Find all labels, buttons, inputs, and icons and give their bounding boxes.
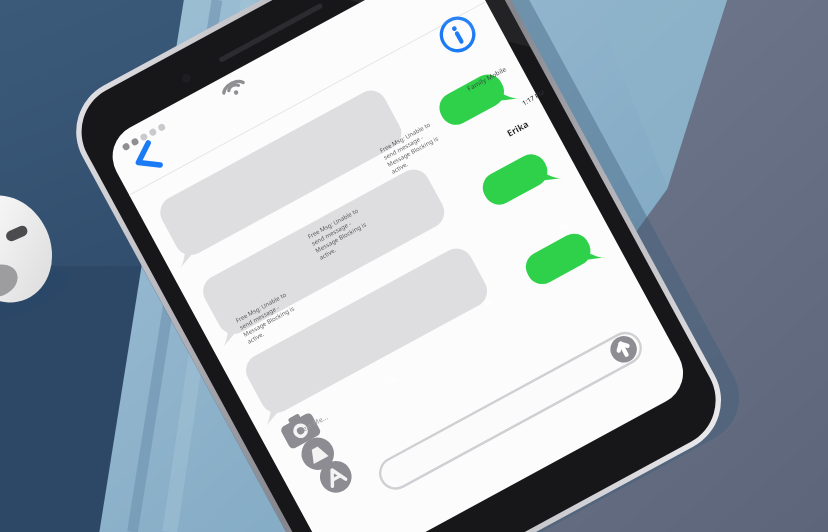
button[interactable]: Text Me message field	[278, 378, 398, 472]
staticText: Free Msg: Unable to send message - Messa…	[234, 286, 308, 346]
button[interactable]: App Store	[218, 364, 262, 408]
staticText: Erika	[504, 117, 530, 139]
button[interactable]: Conversation details	[564, 174, 608, 218]
staticText: Free Msg: Unable to send message - Messa…	[378, 116, 452, 176]
button[interactable]: Back	[426, 50, 478, 99]
staticText: Hi	[483, 297, 494, 308]
staticText: Family Mobile	[465, 64, 508, 93]
staticText: Free Msg: Unable to send message - Messa…	[306, 202, 380, 262]
staticText: Text Me...	[298, 412, 330, 436]
staticText: 1:17 PM	[520, 88, 547, 107]
button[interactable]: Apps	[244, 400, 288, 444]
button[interactable]: Send	[331, 439, 371, 479]
button[interactable]: Camera	[192, 326, 237, 370]
